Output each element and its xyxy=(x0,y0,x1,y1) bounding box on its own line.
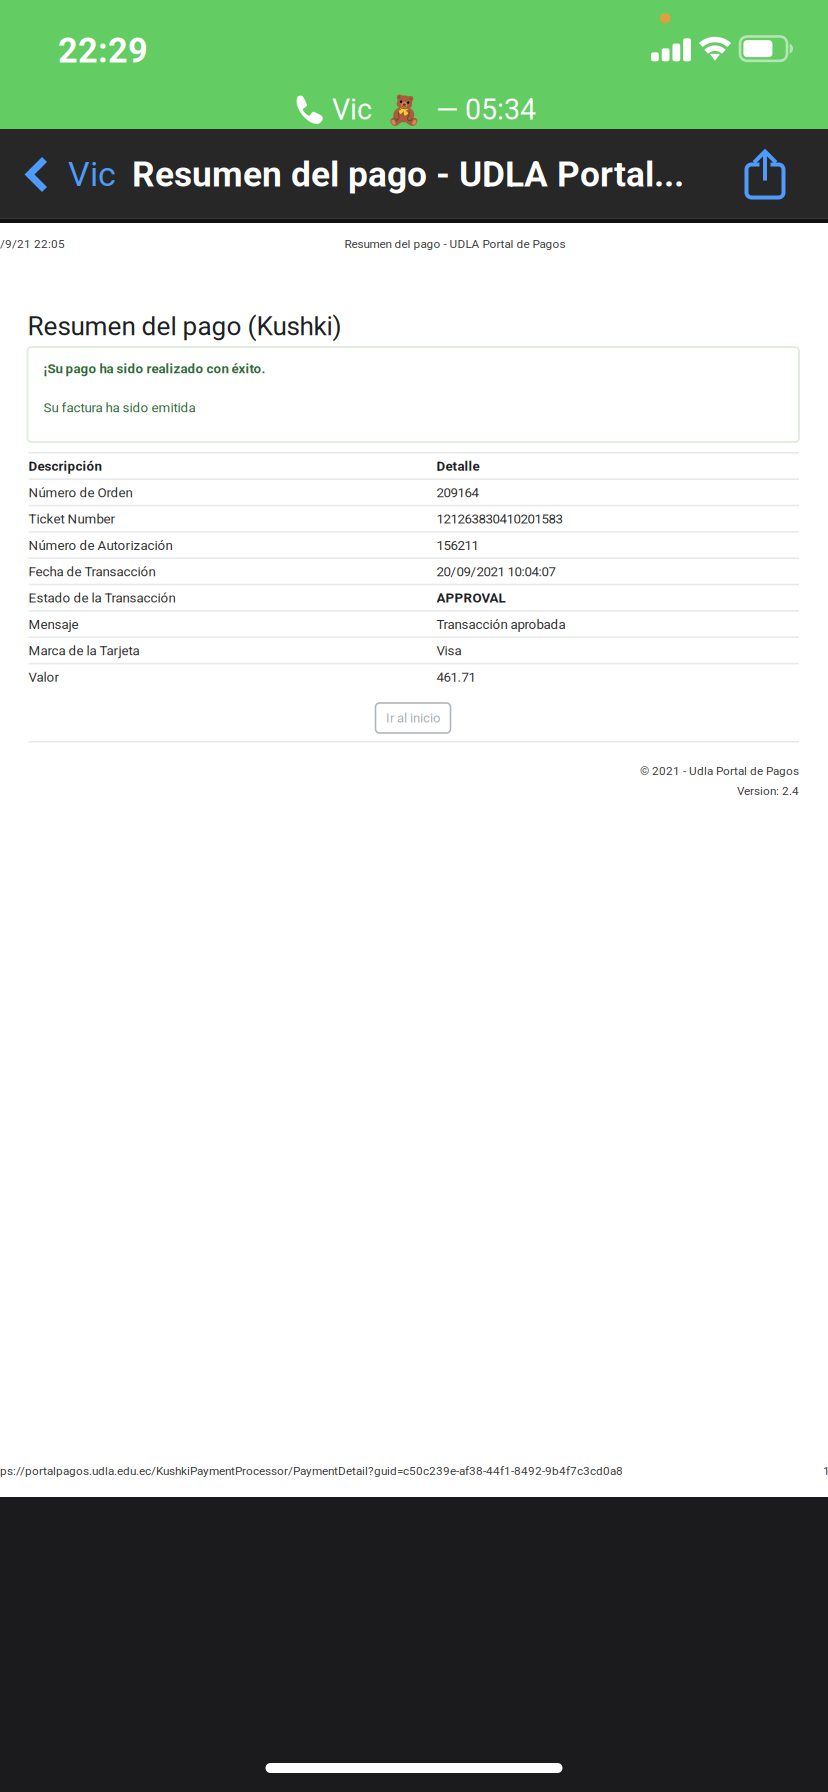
staticText: Su factura ha sido emitida xyxy=(43,400,195,416)
button[interactable]: Share xyxy=(719,129,811,220)
staticText: Número de Orden xyxy=(28,485,132,500)
button[interactable]: Ir al inicio xyxy=(375,703,450,733)
staticText: Ir al inicio xyxy=(386,710,440,726)
staticText: Vic xyxy=(68,155,116,194)
staticText: Version: 2.4 xyxy=(737,784,799,798)
staticText: 209164 xyxy=(436,485,478,500)
staticText: 20/09/2021 10:04:07 xyxy=(436,564,555,579)
staticText: Valor xyxy=(28,669,59,685)
staticText: Descripción xyxy=(28,458,101,474)
staticText: 461.71 xyxy=(436,669,475,685)
staticText: Fecha de Transacción xyxy=(28,564,155,579)
staticText: 1 xyxy=(823,1464,828,1478)
staticText: Visa xyxy=(436,643,461,659)
staticText: 156211 xyxy=(436,537,478,553)
staticText: APPROVAL xyxy=(436,590,505,606)
staticText: © 2021 - Udla Portal de Pagos xyxy=(640,764,799,778)
staticText: Resumen del pago (Kushki) xyxy=(27,311,341,342)
staticText: 121263830410201583 xyxy=(436,511,562,527)
staticText: 22:29 xyxy=(58,30,148,71)
staticText: Detalle xyxy=(436,458,479,474)
staticText: Ticket Number xyxy=(28,511,115,527)
staticText: Resumen del pago - UDLA Portal... xyxy=(132,154,684,195)
staticText: Número de Autorización xyxy=(28,537,172,553)
staticText: Marca de la Tarjeta xyxy=(28,643,139,659)
staticText: Vic 🧸 — 05:34 xyxy=(332,93,536,127)
staticText: Mensaje xyxy=(28,617,78,632)
staticText: Estado de la Transacción xyxy=(28,590,175,606)
staticText: Resumen del pago - UDLA Portal de Pagos xyxy=(344,237,565,251)
staticText: ¡Su pago ha sido realizado con éxito. xyxy=(43,361,265,377)
staticText: ps://portalpagos.udla.edu.ec/KushkiPayme… xyxy=(0,1464,623,1478)
button[interactable]: Vic xyxy=(0,129,140,220)
staticText: Transacción aprobada xyxy=(436,617,565,632)
staticText: 20/9/21 22:05 xyxy=(0,237,65,251)
